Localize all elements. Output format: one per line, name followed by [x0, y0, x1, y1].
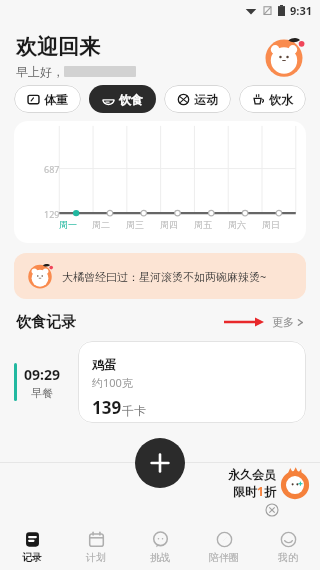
staticText: 09:29: [24, 365, 60, 384]
staticText: 永久会员: [228, 467, 276, 482]
button[interactable]: 更多: [272, 315, 304, 329]
staticText: 鸡蛋: [92, 357, 116, 372]
staticText: 周三: [126, 219, 160, 230]
button[interactable]: 计划: [64, 524, 128, 570]
staticText: 欢迎回来: [16, 34, 100, 60]
staticText: 周日: [262, 219, 296, 230]
staticText: 体重: [44, 92, 68, 107]
staticText: 129: [44, 208, 60, 220]
staticText: 大橘曾经曰过：星河滚烫不如两碗麻辣烫~: [62, 269, 267, 284]
staticText: 周一: [59, 219, 92, 230]
staticText: 周五: [194, 219, 228, 230]
staticText: 早上好，: [16, 64, 64, 79]
staticText: 运动: [194, 92, 218, 107]
button[interactable]: 个人头像: [262, 35, 306, 79]
staticText: 记录: [22, 551, 42, 564]
staticText: 更多: [272, 315, 294, 329]
staticText: 饮食: [119, 92, 143, 107]
staticText: 折: [264, 484, 276, 499]
staticText: 139: [92, 396, 122, 419]
staticText: 饮水: [269, 92, 293, 107]
button[interactable]: 永久会员: [228, 466, 312, 500]
button[interactable]: 关闭广告: [266, 504, 278, 516]
staticText: 限时: [233, 484, 257, 499]
button[interactable]: 体重: [14, 85, 81, 113]
button[interactable]: 687: [14, 121, 306, 243]
button[interactable]: 饮水: [239, 85, 306, 113]
button[interactable]: 鸡蛋: [78, 341, 306, 423]
staticText: 早餐: [31, 386, 53, 400]
staticText: 周六: [228, 219, 262, 230]
button[interactable]: 运动: [164, 85, 231, 113]
staticText: 687: [44, 163, 60, 175]
staticText: 约100克: [92, 375, 133, 390]
button[interactable]: 记录: [0, 524, 64, 570]
button[interactable]: 添加记录: [135, 438, 185, 488]
button[interactable]: 我的: [256, 524, 320, 570]
staticText: 饮食记录: [16, 313, 76, 332]
staticText: 我的: [278, 551, 298, 564]
button[interactable]: 大橘曾经曰过：星河滚烫不如两碗麻辣烫~: [14, 253, 306, 299]
staticText: 千卡: [122, 403, 146, 418]
staticText: 周二: [92, 219, 126, 230]
staticText: 周四: [160, 219, 194, 230]
button[interactable]: 饮食: [89, 85, 156, 113]
staticText: 挑战: [150, 551, 170, 564]
staticText: 计划: [86, 551, 106, 564]
button[interactable]: 陪伴圈: [192, 524, 256, 570]
staticText: 陪伴圈: [209, 551, 239, 564]
button[interactable]: 挑战: [128, 524, 192, 570]
staticText: 1: [257, 483, 264, 499]
staticText: 9:31: [290, 3, 312, 18]
